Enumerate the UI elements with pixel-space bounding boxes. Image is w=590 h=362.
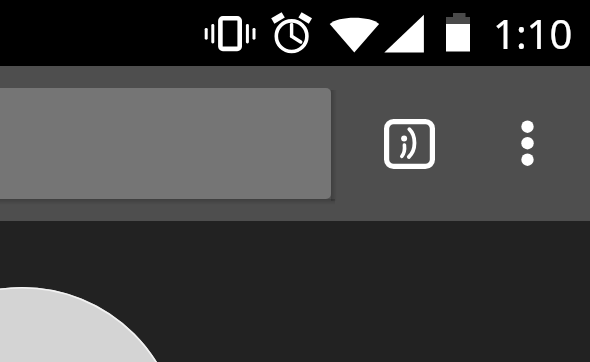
- staticText: 1:10: [493, 6, 573, 60]
- button[interactable]: Insert emoji: [374, 109, 445, 175]
- button[interactable]: More options: [504, 109, 551, 175]
